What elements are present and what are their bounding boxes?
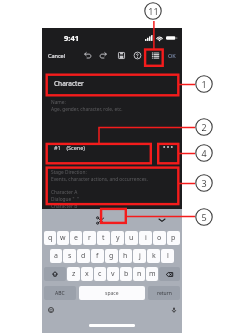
button[interactable]: space <box>79 286 145 300</box>
staticText: s <box>68 251 72 261</box>
staticText: n <box>137 269 142 279</box>
button[interactable]: Help <box>132 50 143 61</box>
staticText: o <box>157 233 162 243</box>
button[interactable]: s <box>63 249 76 263</box>
button[interactable]: d <box>77 249 90 263</box>
staticText: 5 <box>201 211 207 223</box>
button[interactable]: e <box>70 231 82 245</box>
staticText: 1 <box>201 78 207 90</box>
staticText: OK <box>168 52 176 59</box>
staticText: Character B <box>51 203 78 210</box>
staticText: k <box>152 251 156 261</box>
staticText: v <box>111 269 115 279</box>
button[interactable] <box>159 267 180 281</box>
button[interactable]: Character <box>46 72 179 95</box>
button[interactable]: k <box>147 249 160 263</box>
staticText: l <box>167 251 169 261</box>
button[interactable]: h <box>119 249 132 263</box>
staticText: return <box>157 290 172 297</box>
staticText: Events, character actions, and occurrenc… <box>51 176 148 183</box>
staticText: space <box>105 290 119 297</box>
staticText: p <box>171 233 176 243</box>
button[interactable]: Hide keyboard <box>156 214 168 226</box>
button[interactable]: o <box>153 231 166 245</box>
staticText: Stage Direction: <box>51 169 87 176</box>
button[interactable]: Cancel <box>46 50 68 61</box>
button[interactable]: w <box>57 231 69 245</box>
button[interactable]: z <box>67 267 80 281</box>
button[interactable]: t <box>97 231 110 245</box>
staticText: m <box>149 269 156 279</box>
button[interactable]: #1 (Scene) <box>46 139 154 155</box>
button[interactable]: b <box>120 267 132 281</box>
staticText: a <box>54 251 58 261</box>
button[interactable] <box>44 267 66 281</box>
button[interactable]: Emoji <box>46 305 55 314</box>
button[interactable]: p <box>167 231 180 245</box>
staticText: ABC <box>55 290 65 297</box>
button[interactable]: return <box>148 286 180 300</box>
button[interactable]: g <box>105 249 118 263</box>
button[interactable]: x <box>81 267 93 281</box>
staticText: e <box>74 233 78 243</box>
staticText: x <box>85 269 89 279</box>
button[interactable]: Undo <box>82 50 93 61</box>
staticText: 9:41 <box>64 33 79 43</box>
button[interactable]: More options <box>158 139 178 155</box>
button[interactable]: i <box>139 231 152 245</box>
button[interactable]: ABC <box>44 286 76 300</box>
button[interactable]: Dictate <box>169 305 178 314</box>
staticText: i <box>145 233 147 243</box>
staticText: Character <box>54 79 84 88</box>
button[interactable]: a <box>50 249 62 263</box>
staticText: 11 <box>148 5 159 17</box>
button[interactable]: y <box>111 231 124 245</box>
staticText: z <box>72 269 76 279</box>
button[interactable]: Redo <box>98 50 109 61</box>
button[interactable]: Cut <box>88 212 112 228</box>
staticText: #1 (Scene) <box>54 144 85 151</box>
staticText: w <box>60 233 66 243</box>
staticText: 2 <box>201 121 207 133</box>
button[interactable]: Outline <box>150 50 161 61</box>
button[interactable]: f <box>91 249 104 263</box>
staticText: Character A <box>51 189 78 196</box>
button[interactable]: r <box>83 231 96 245</box>
button[interactable]: l <box>161 249 174 263</box>
staticText: r <box>88 233 91 243</box>
button[interactable]: m <box>146 267 158 281</box>
staticText: c <box>98 269 102 279</box>
staticText: 4 <box>201 147 207 159</box>
staticText: d <box>81 251 86 261</box>
button[interactable]: u <box>125 231 138 245</box>
staticText: q <box>48 233 53 243</box>
staticText: 3 <box>201 177 207 189</box>
staticText: f <box>96 251 99 261</box>
staticText: j <box>139 251 141 261</box>
button[interactable]: OK <box>166 50 178 61</box>
staticText: b <box>124 269 129 279</box>
staticText: Cancel <box>48 52 66 59</box>
button[interactable]: n <box>133 267 145 281</box>
staticText: t <box>102 233 105 243</box>
staticText: h <box>123 251 128 261</box>
button[interactable]: v <box>107 267 119 281</box>
staticText: Age, gender, character, role, etc. <box>51 106 123 113</box>
staticText: u <box>129 233 134 243</box>
staticText: y <box>116 233 120 243</box>
button[interactable]: j <box>133 249 146 263</box>
button[interactable]: c <box>94 267 106 281</box>
button[interactable]: q <box>44 231 56 245</box>
button[interactable]: Save <box>116 50 127 61</box>
staticText: g <box>109 251 114 261</box>
staticText: Name: <box>51 99 66 106</box>
staticText: Dialogue " " <box>51 196 79 203</box>
